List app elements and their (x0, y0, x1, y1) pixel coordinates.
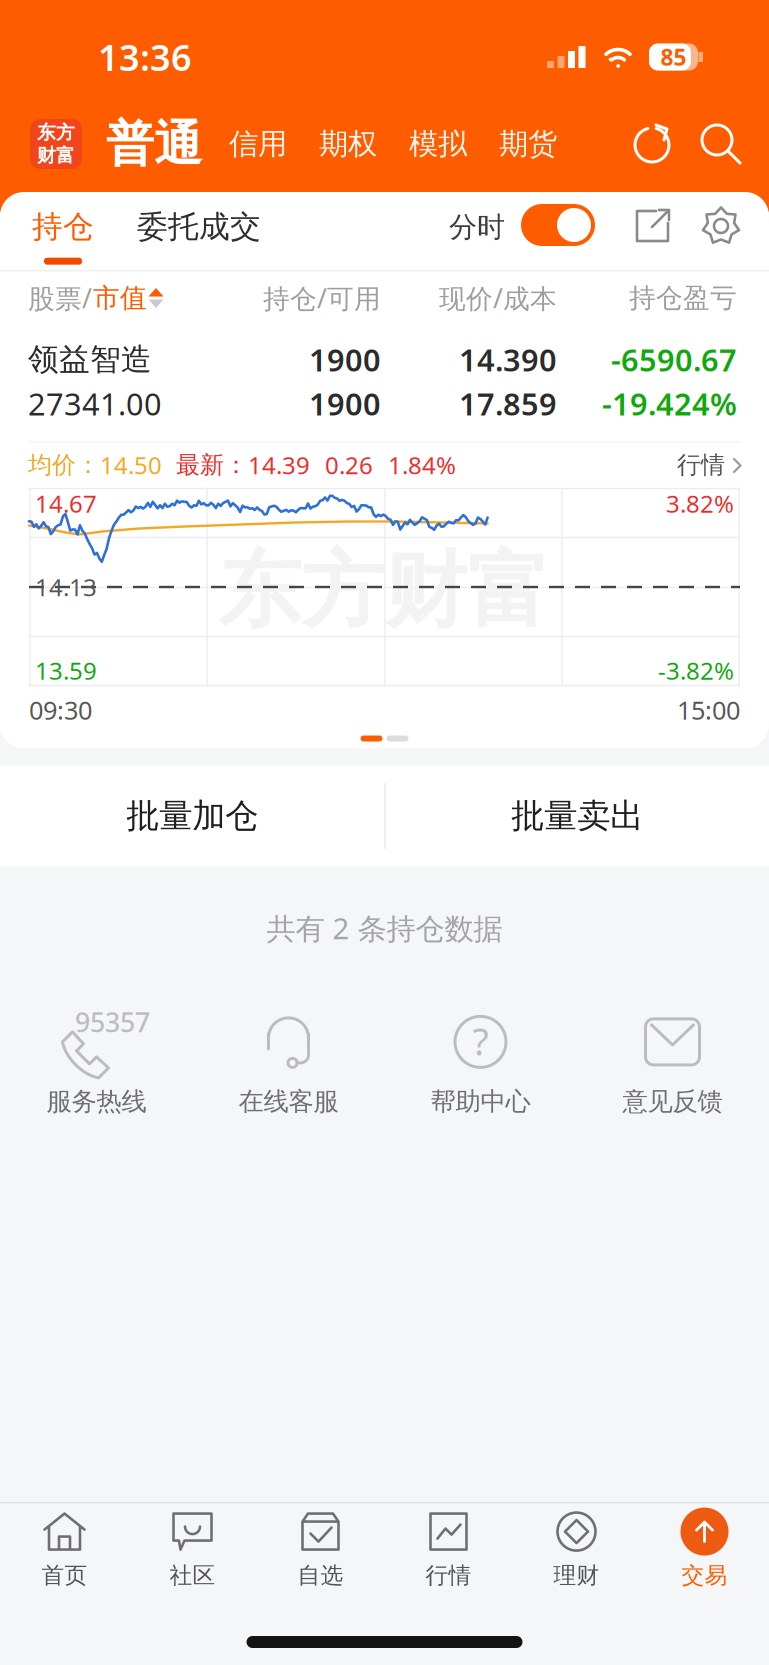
staticText: 13:36 (98, 33, 192, 81)
staticText: 持仓 (32, 208, 94, 246)
staticText: 行情 (677, 450, 725, 480)
staticText: 最新： (176, 450, 248, 480)
staticText: 意见反馈 (622, 1086, 722, 1117)
staticText: 财富 (37, 144, 75, 167)
button[interactable]: 普通 (106, 111, 202, 177)
staticText: 85 (660, 42, 686, 72)
button[interactable]: 行情 (384, 1514, 512, 1586)
staticText: 委托成交 (137, 208, 261, 246)
staticText: 14.390 (459, 339, 557, 380)
staticText: 95357 (75, 1004, 150, 1040)
staticText: 批量卖出 (511, 795, 643, 836)
button[interactable]: 意见反馈 (576, 999, 768, 1125)
button[interactable]: Refresh (623, 114, 683, 174)
staticText: 批量加仓 (126, 795, 258, 836)
staticText: ? (472, 1016, 488, 1066)
button[interactable]: East Money home (30, 119, 82, 169)
button[interactable]: 期货 (492, 113, 564, 175)
staticText: 共有 2 条持仓数据 (266, 908, 502, 947)
button[interactable]: 社区 (128, 1514, 256, 1586)
button[interactable]: 股票/ (28, 271, 164, 324)
staticText: 持仓盈亏 (629, 282, 737, 314)
staticText: 现价/成本 (439, 280, 557, 316)
button[interactable]: 信用 (222, 113, 294, 175)
staticText: 3.82% (666, 488, 734, 519)
staticText: 期货 (499, 126, 557, 162)
staticText: 普通 (106, 114, 202, 173)
button[interactable]: Settings (693, 192, 749, 270)
staticText: 行情 (425, 1562, 471, 1589)
staticText: 市值 (93, 282, 147, 314)
staticText: 09:30 (29, 693, 92, 727)
staticText: 自选 (297, 1562, 343, 1589)
staticText: 东方 (37, 121, 75, 144)
button[interactable]: 自选 (256, 1514, 384, 1586)
staticText: 在线客服 (238, 1086, 338, 1117)
staticText: 14.39 (248, 449, 310, 481)
staticText: 13.59 (35, 655, 97, 686)
staticText: 社区 (169, 1562, 215, 1589)
button[interactable]: 首页 (0, 1514, 128, 1586)
button[interactable]: 批量加仓 (0, 765, 384, 866)
button[interactable]: 95357 (0, 999, 192, 1125)
button[interactable]: 行情 (677, 441, 743, 489)
staticText: -6590.67 (611, 339, 737, 380)
staticText: 帮助中心 (430, 1086, 530, 1117)
staticText: 持仓/可用 (263, 280, 381, 316)
staticText: -19.424% (602, 383, 737, 424)
button[interactable]: 持仓 (30, 192, 96, 270)
button[interactable]: 模拟 (402, 113, 474, 175)
staticText: -3.82% (658, 655, 734, 686)
button[interactable]: Share (625, 192, 681, 270)
staticText: 1900 (309, 383, 381, 424)
button[interactable]: 委托成交 (134, 192, 264, 270)
staticText: 1.84% (388, 449, 456, 481)
button[interactable]: 交易 (640, 1514, 768, 1586)
staticText: 分时 (449, 210, 505, 244)
staticText: 14.50 (100, 449, 162, 481)
staticText: 15:00 (677, 693, 740, 727)
staticText: 14.67 (35, 488, 97, 519)
staticText: 期权 (319, 126, 377, 162)
staticText: 模拟 (409, 126, 467, 162)
button[interactable]: Intraday chart toggle (521, 192, 595, 270)
staticText: 14.13 (35, 571, 97, 603)
staticText: 17.859 (459, 383, 557, 424)
staticText: 信用 (229, 126, 287, 162)
button[interactable]: 批量卖出 (386, 765, 769, 866)
staticText: 首页 (41, 1562, 87, 1589)
staticText: 领益智造 (28, 341, 152, 378)
button[interactable]: 在线客服 (192, 999, 384, 1125)
staticText: 东方财富 (218, 540, 550, 642)
button[interactable]: Search (691, 114, 751, 174)
button[interactable]: 期权 (312, 113, 384, 175)
button[interactable]: 领益智造 (0, 324, 769, 441)
staticText: 股票/ (28, 280, 92, 316)
button[interactable]: ? (384, 999, 576, 1125)
staticText: 均价： (28, 450, 100, 480)
staticText: 27341.00 (28, 383, 162, 424)
staticText: 1900 (309, 339, 381, 380)
staticText: 交易 (681, 1562, 727, 1589)
staticText: 0.26 (325, 449, 373, 481)
button[interactable]: 理财 (512, 1514, 640, 1586)
staticText: 服务热线 (46, 1086, 146, 1117)
staticText: 理财 (553, 1562, 599, 1589)
